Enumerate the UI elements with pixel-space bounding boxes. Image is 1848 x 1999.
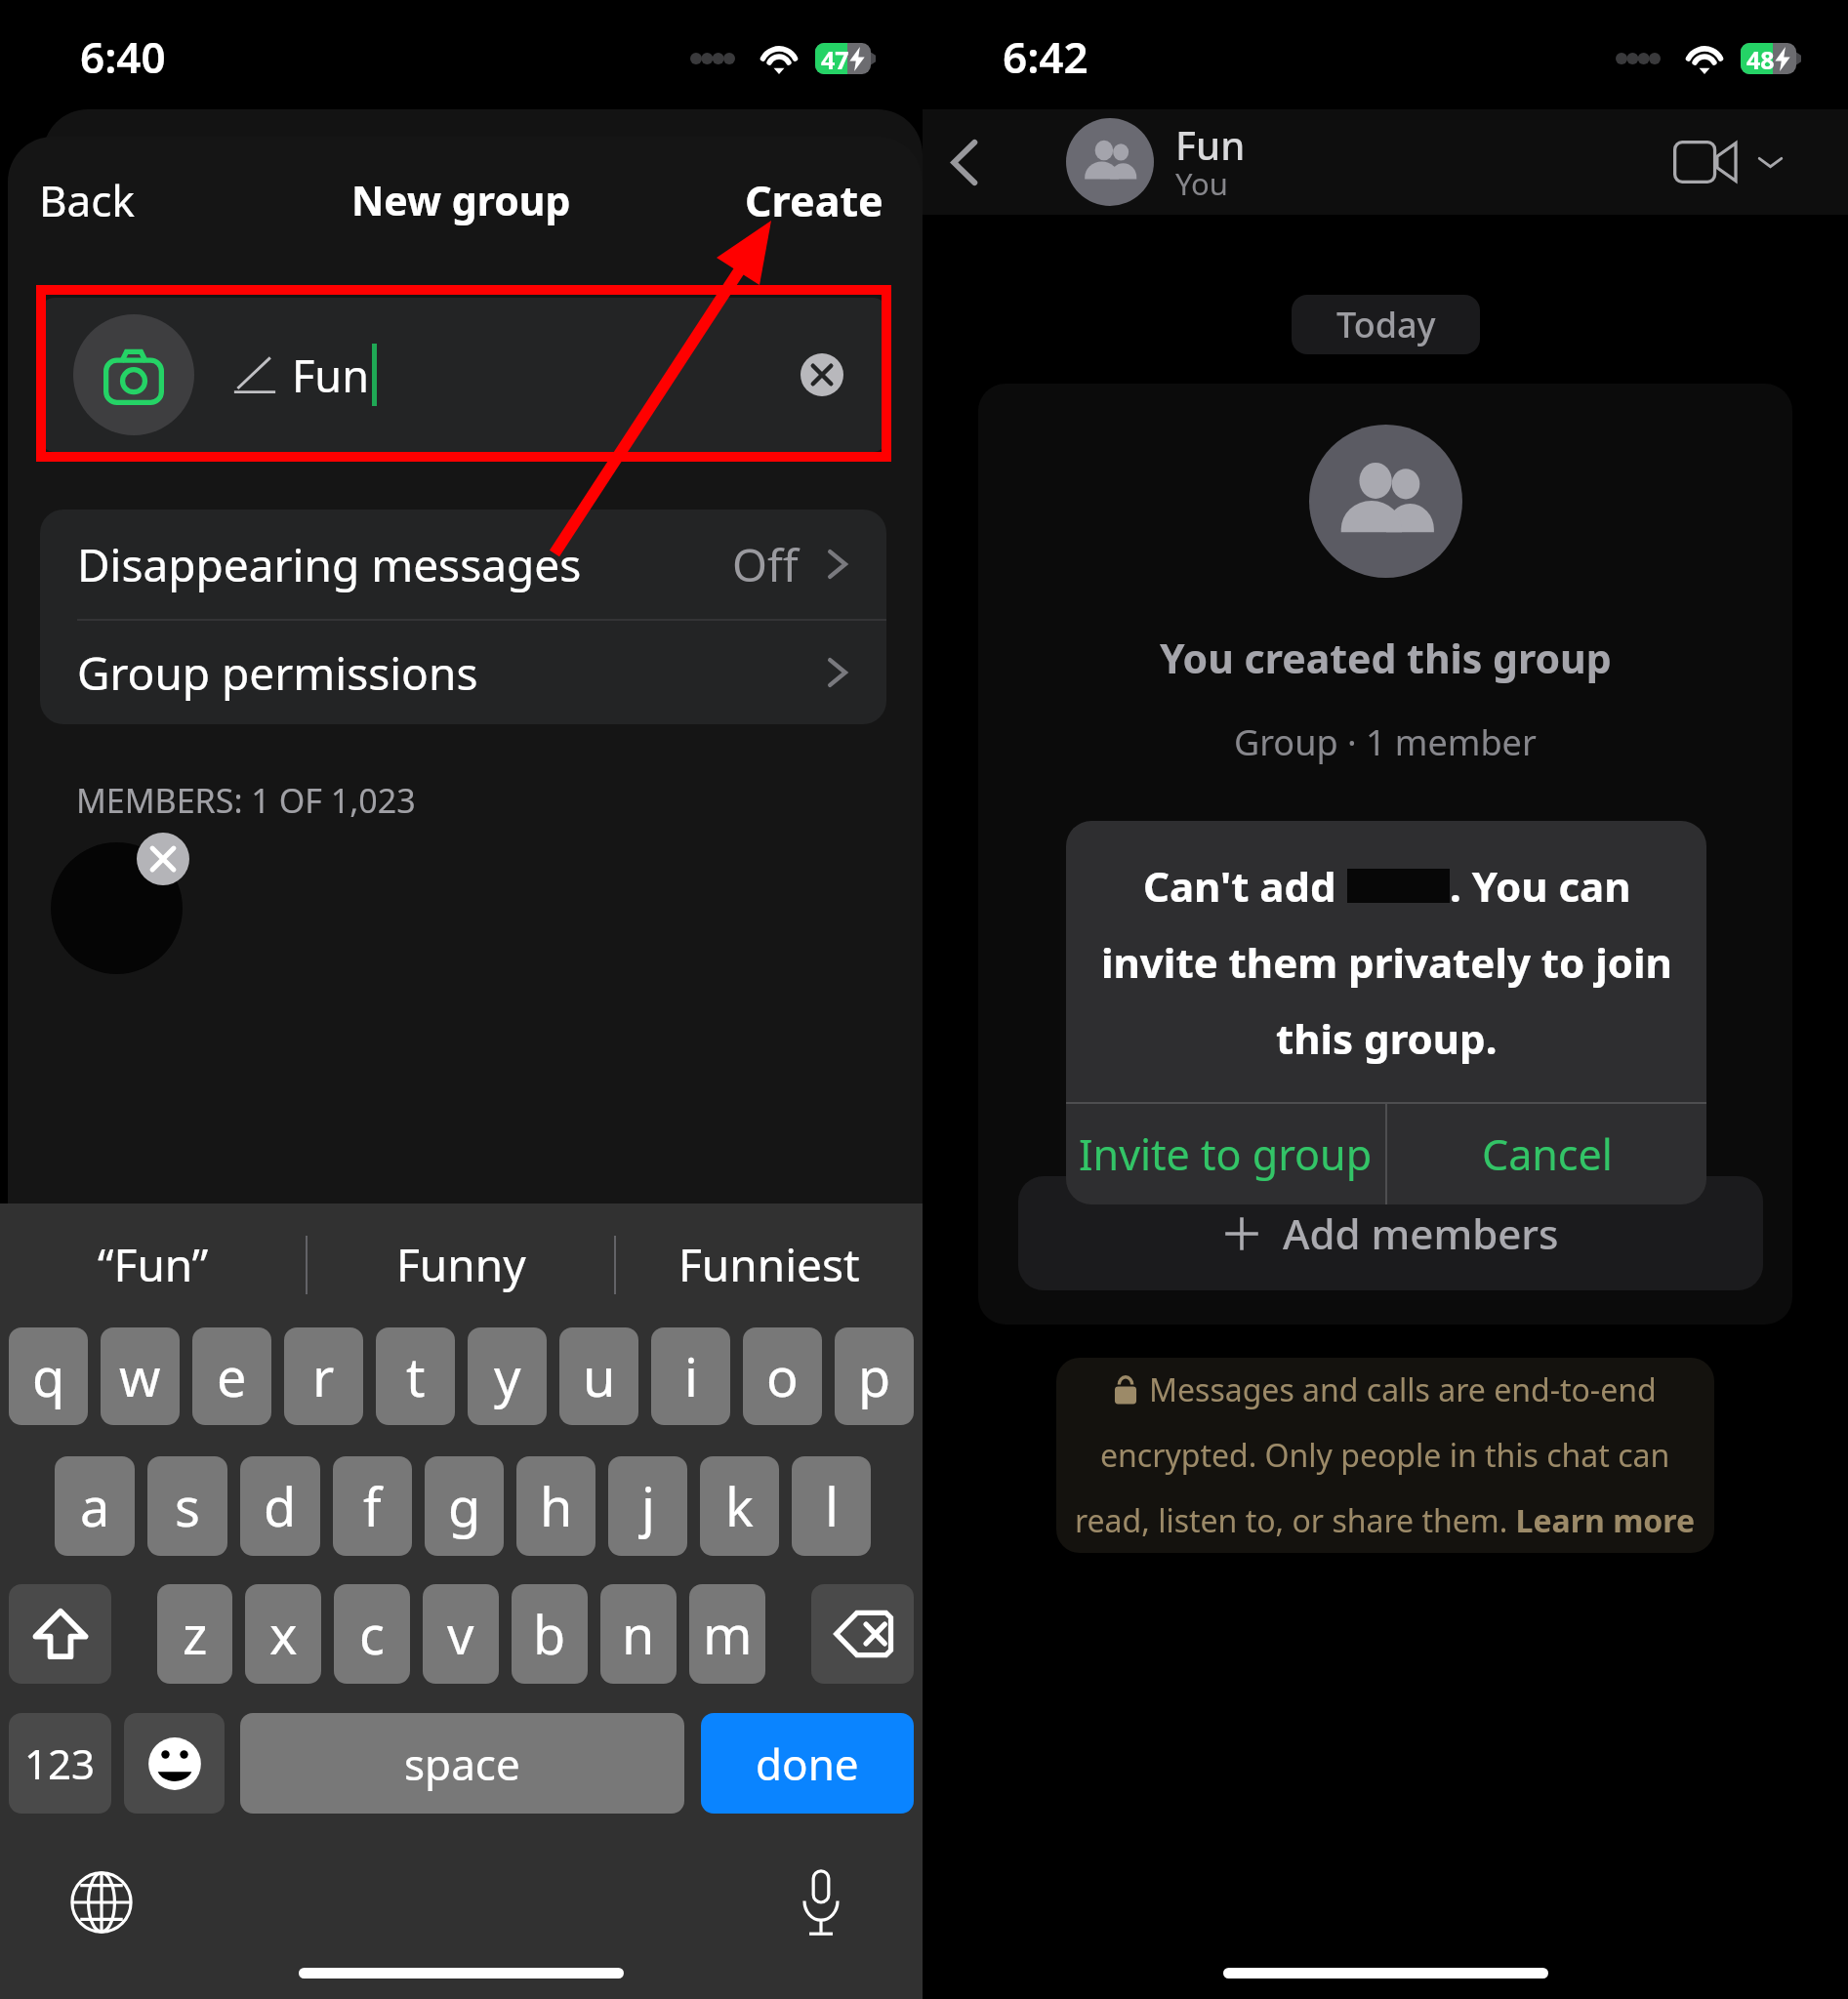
button[interactable]: f — [333, 1456, 412, 1556]
staticText: space — [404, 1734, 520, 1793]
button[interactable]: a — [55, 1456, 135, 1556]
staticText: v — [447, 1598, 474, 1670]
button[interactable]: o — [743, 1327, 822, 1425]
staticText: h — [540, 1470, 573, 1542]
staticText: j — [641, 1470, 655, 1542]
button[interactable]: Funniest — [616, 1203, 923, 1326]
staticText: r — [312, 1340, 335, 1412]
staticText: p — [858, 1340, 891, 1412]
staticText: n — [622, 1598, 655, 1670]
staticText: this group. — [1276, 1010, 1498, 1066]
button[interactable]: z — [157, 1584, 232, 1684]
staticText: Funny — [396, 1234, 526, 1295]
staticText: s — [175, 1470, 200, 1542]
button[interactable]: Clear name — [801, 353, 843, 396]
staticText: l — [825, 1470, 839, 1542]
staticText: Invite to group — [1079, 1125, 1373, 1183]
button[interactable]: Fun — [41, 298, 886, 452]
staticText: c — [359, 1598, 385, 1670]
staticText: Cancel — [1482, 1125, 1613, 1183]
staticText: Create — [745, 172, 883, 229]
button[interactable]: Add members — [1018, 1176, 1763, 1290]
button[interactable]: Shift — [9, 1584, 111, 1684]
button[interactable]: t — [376, 1327, 455, 1425]
button[interactable]: x — [245, 1584, 321, 1684]
staticText: Messages and calls are end-to-end — [1149, 1368, 1657, 1411]
button[interactable]: j — [608, 1456, 687, 1556]
staticText: done — [756, 1734, 859, 1793]
button[interactable]: Funny — [308, 1203, 614, 1326]
staticText: d — [264, 1470, 297, 1542]
staticText: Today — [1336, 301, 1436, 348]
button[interactable]: Cancel — [1387, 1104, 1706, 1204]
button[interactable]: Disappearing messages — [40, 510, 886, 619]
staticText: Fun — [1175, 118, 1246, 171]
button[interactable]: m — [689, 1584, 765, 1684]
staticText: g — [448, 1470, 481, 1542]
staticText: 48 — [1746, 43, 1775, 74]
staticText: z — [183, 1598, 208, 1670]
button[interactable]: n — [600, 1584, 677, 1684]
button[interactable]: 123 — [9, 1713, 111, 1814]
staticText: t — [406, 1340, 426, 1412]
staticText: y — [494, 1340, 521, 1412]
button[interactable]: Video call — [1663, 131, 1747, 193]
staticText: Disappearing messages — [77, 534, 582, 595]
button[interactable]: Emoji — [124, 1713, 225, 1814]
button[interactable]: k — [700, 1456, 779, 1556]
button[interactable]: r — [284, 1327, 363, 1425]
button[interactable]: w — [101, 1327, 180, 1425]
button[interactable]: Back — [928, 127, 999, 197]
staticText: Add members — [1283, 1205, 1559, 1261]
staticText: 123 — [24, 1735, 96, 1791]
button[interactable]: Backspace — [811, 1584, 914, 1684]
button[interactable]: c — [334, 1584, 410, 1684]
staticText: Fun — [292, 346, 369, 405]
button[interactable]: y — [468, 1327, 547, 1425]
staticText: Group permissions — [77, 642, 478, 704]
button[interactable]: Group permissions — [40, 621, 886, 724]
staticText: 6:40 — [80, 27, 166, 86]
staticText: b — [533, 1598, 566, 1670]
button[interactable]: space — [240, 1713, 684, 1814]
staticText: encrypted. Only people in this chat can — [1100, 1434, 1670, 1477]
staticText: “Fun” — [98, 1234, 209, 1295]
staticText: e — [217, 1340, 247, 1412]
button[interactable]: q — [9, 1327, 88, 1425]
staticText: k — [725, 1470, 754, 1542]
button[interactable]: Change keyboard — [70, 1871, 133, 1934]
button[interactable]: b — [512, 1584, 588, 1684]
staticText: You created this group — [1160, 631, 1612, 685]
staticText: a — [80, 1470, 110, 1542]
staticText: read, listen to, or share them. Learn mo… — [1075, 1499, 1696, 1542]
staticText: New group — [351, 173, 571, 227]
staticText: 6:42 — [1003, 27, 1088, 86]
button[interactable]: g — [425, 1456, 504, 1556]
button[interactable]: d — [240, 1456, 320, 1556]
button[interactable]: p — [835, 1327, 914, 1425]
staticText: You — [1175, 163, 1228, 204]
staticText: o — [766, 1340, 799, 1412]
staticText: Back — [39, 171, 135, 229]
button[interactable]: Dictate — [799, 1868, 843, 1937]
button[interactable]: Invite to group — [1066, 1104, 1385, 1204]
button[interactable]: More options — [1747, 145, 1793, 180]
staticText: Can't add — [1143, 858, 1347, 914]
staticText: w — [119, 1340, 161, 1412]
button[interactable]: u — [559, 1327, 638, 1425]
button[interactable]: Back — [27, 163, 146, 237]
staticText: m — [703, 1598, 753, 1670]
staticText: . You can — [1450, 858, 1631, 914]
button[interactable]: v — [423, 1584, 499, 1684]
button[interactable]: Today — [1292, 295, 1480, 354]
button[interactable]: done — [701, 1713, 914, 1814]
button[interactable]: h — [516, 1456, 595, 1556]
button[interactable]: Create — [733, 164, 895, 237]
button[interactable]: Remove member — [137, 833, 189, 885]
staticText: Off — [732, 534, 799, 595]
button[interactable]: e — [192, 1327, 271, 1425]
button[interactable]: l — [792, 1456, 871, 1556]
button[interactable]: i — [651, 1327, 730, 1425]
button[interactable]: “Fun” — [0, 1203, 306, 1326]
button[interactable]: s — [147, 1456, 227, 1556]
